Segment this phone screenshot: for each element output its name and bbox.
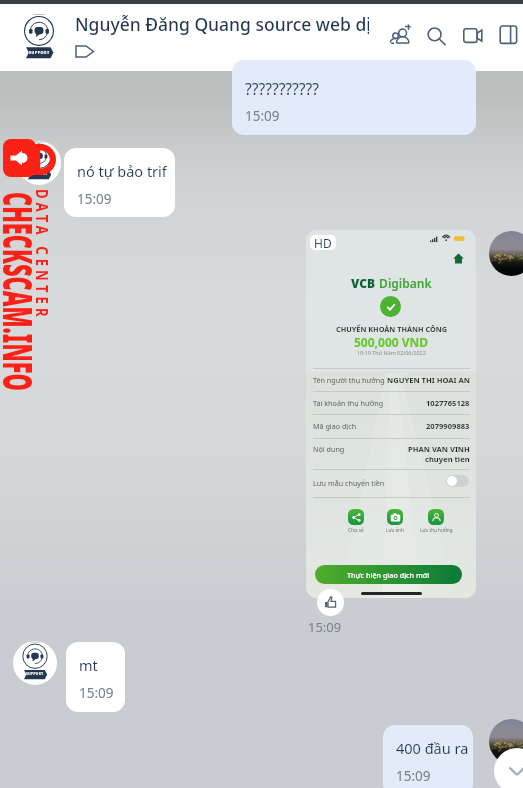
staticText: 15:09	[79, 684, 114, 702]
staticText: SUPPORT	[30, 172, 48, 176]
staticText: SUPPORT	[26, 672, 44, 676]
button[interactable]: Lưu thụ hưởng	[414, 509, 458, 533]
staticText: 15:09	[396, 767, 431, 785]
button[interactable]: Nguyễn Đăng Quang source web dịch vụ	[75, 11, 369, 37]
staticText: 19:19 Thứ Năm 02/06/2022	[357, 349, 426, 356]
staticText: Tên người thụ hưởng	[313, 375, 385, 385]
staticText: Thực hiện giao dịch mới	[347, 570, 430, 580]
staticText: Lưu mẫu chuyển tiền	[313, 478, 385, 488]
staticText: SUPPORT	[29, 50, 50, 55]
staticText: 1027765128	[426, 398, 470, 408]
staticText: PHAN VAN VINH	[408, 444, 470, 454]
button[interactable]: mt	[66, 642, 125, 712]
staticText: Lưu thụ hưởng	[420, 527, 453, 533]
staticText: 500,000 VND	[354, 334, 429, 350]
staticText: NGUYEN THI HOAI AN	[387, 375, 470, 385]
staticText: chuyen tien	[425, 454, 470, 464]
button[interactable]: Search	[424, 24, 450, 50]
staticText: CHECKSCAM.INFO	[0, 192, 46, 391]
staticText: nó tự bảo trif	[77, 161, 167, 181]
staticText: Nội dung	[313, 444, 345, 454]
button[interactable]: Scroll to bottom	[494, 748, 523, 788]
staticText: 15:09	[245, 107, 280, 125]
staticText: HD	[314, 235, 332, 250]
staticText: Mã giao dịch	[313, 421, 357, 431]
staticText: 15:09	[77, 190, 112, 208]
staticText: 15:09	[308, 618, 342, 636]
button[interactable]: Like	[317, 589, 344, 616]
staticText: Lưu ảnh	[386, 527, 404, 533]
button[interactable]: nó tự bảo trif	[64, 148, 175, 217]
button[interactable]: ???????????	[232, 60, 476, 135]
staticText: Nguyễn Đăng Quang source web dịch vụ	[75, 12, 369, 36]
staticText: mt	[79, 655, 98, 675]
button[interactable]: Add member	[388, 22, 414, 48]
staticText: DATA CENTER	[31, 189, 53, 321]
button[interactable]: Chia sẻ	[334, 509, 378, 533]
button[interactable]: Video call	[460, 24, 486, 50]
button[interactable]: Lưu ảnh	[373, 509, 417, 533]
staticText: CHUYỂN KHOẢN THÀNH CÔNG	[336, 324, 447, 334]
staticText: ???????????	[245, 78, 319, 99]
button[interactable]: Save transfer template	[446, 475, 469, 487]
staticText: 400 đầu ra	[396, 738, 469, 758]
staticText: 2079909883	[426, 421, 470, 431]
staticText: Chia sẻ	[348, 527, 364, 533]
staticText: VCB	[351, 275, 376, 291]
button[interactable]: 400 đầu ra	[383, 725, 473, 788]
button[interactable]: Thực hiện giao dịch mới	[315, 565, 462, 584]
button[interactable]: Side panel	[496, 22, 522, 48]
button[interactable]: VCB	[306, 230, 476, 598]
staticText: Digibank	[376, 275, 432, 291]
staticText: Tài khoản thụ hưởng	[313, 398, 384, 408]
